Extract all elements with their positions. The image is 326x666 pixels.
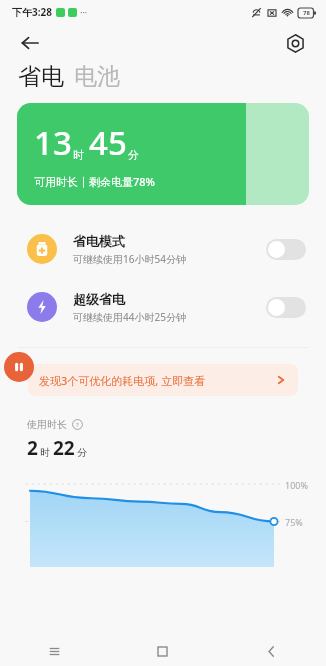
button[interactable]: 13 [17, 103, 309, 205]
button[interactable]: Settings [280, 28, 310, 58]
staticText: 可用时长丨剩余电量78% [34, 174, 155, 189]
staticText: 75% [285, 516, 303, 528]
button[interactable]: Menu [0, 637, 108, 666]
button[interactable]: 发现3个可优化的耗电项, 立即查看 [28, 364, 298, 396]
staticText: 分 [77, 446, 87, 459]
staticText: 省电模式 [73, 233, 125, 249]
staticText: ? [76, 421, 79, 429]
staticText: 超级省电 [73, 291, 125, 307]
staticText: 发现3个可优化的耗电项, 立即查看 [39, 373, 206, 388]
staticText: 100% [285, 479, 308, 491]
staticText: 45 [89, 120, 127, 165]
staticText: 电池 [74, 62, 120, 91]
button[interactable]: Info [72, 419, 83, 430]
button[interactable]: 省电模式 [0, 227, 326, 271]
staticText: 22 [53, 435, 75, 461]
staticText: 78 [303, 9, 310, 17]
button[interactable]: Back [14, 27, 46, 59]
staticText: 使用时长 [27, 418, 67, 431]
staticText: 分 [128, 148, 139, 162]
button[interactable]: 超级省电 [0, 285, 326, 329]
button[interactable]: Home [108, 637, 217, 666]
staticText: 可继续使用44小时25分钟 [73, 310, 186, 324]
button[interactable]: Pause [4, 352, 34, 382]
staticText: 2 [27, 435, 38, 461]
staticText: 时 [40, 446, 50, 459]
staticText: 省电 [18, 62, 64, 91]
button[interactable] [266, 239, 306, 260]
staticText: 13 [34, 120, 72, 165]
staticText: 下午3:28 [12, 5, 52, 19]
staticText: 可继续使用16小时54分钟 [73, 252, 186, 266]
staticText: ··· [80, 6, 88, 18]
button[interactable]: Back [217, 637, 326, 666]
button[interactable] [266, 297, 306, 318]
staticText: 时 [73, 148, 84, 162]
